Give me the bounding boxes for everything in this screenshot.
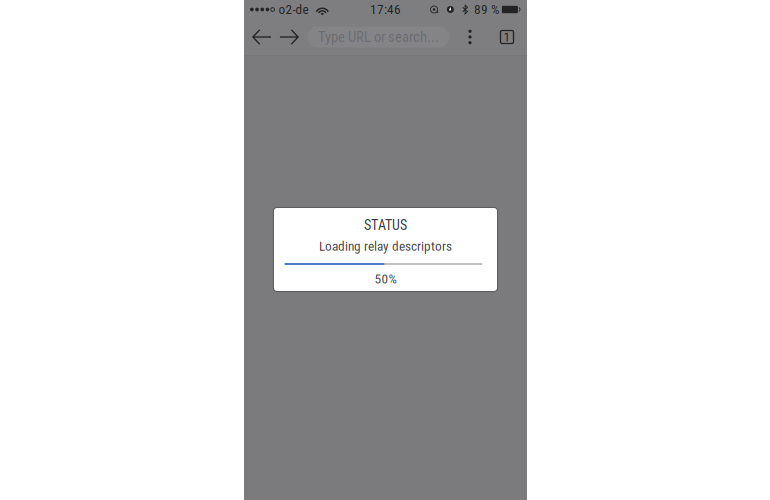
staticText: 50% [374, 271, 396, 287]
staticText: 1 [503, 29, 510, 45]
staticText: STATUS [364, 217, 407, 233]
button[interactable]: Type URL or search... [307, 26, 449, 47]
button[interactable]: Tabs [496, 20, 518, 54]
staticText: Loading relay descriptors [319, 238, 452, 254]
button[interactable]: Menu [459, 20, 481, 54]
staticText: Type URL or search... [318, 28, 439, 46]
staticText: 89 % [474, 2, 499, 17]
button[interactable]: Forward [275, 20, 302, 54]
staticText: o2-de [278, 2, 308, 17]
staticText: 17:46 [370, 2, 401, 17]
button[interactable]: Back [248, 20, 275, 54]
